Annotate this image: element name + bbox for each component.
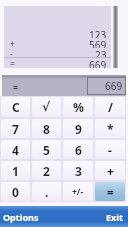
staticText: + (10, 38, 15, 48)
button[interactable]: 4 (1, 140, 30, 159)
button[interactable]: 5 (32, 140, 61, 159)
button[interactable]: - (95, 140, 125, 159)
staticText: - (108, 142, 112, 158)
staticText: 7 (12, 121, 19, 137)
staticText: 123 (89, 28, 107, 38)
button[interactable]: 9 (63, 119, 93, 138)
button[interactable]: Options (0, 211, 39, 223)
staticText: 3 (75, 163, 82, 179)
button[interactable]: +/- (63, 182, 93, 201)
button[interactable]: √ (32, 97, 61, 117)
staticText: % (73, 99, 84, 115)
staticText: 669 (105, 79, 123, 93)
button[interactable]: 8 (32, 119, 61, 138)
button[interactable]: * (95, 119, 125, 138)
staticText: = (13, 81, 19, 93)
button[interactable]: 2 (32, 161, 61, 180)
staticText: + (107, 163, 114, 179)
button[interactable]: . (32, 182, 61, 201)
button[interactable]: 7 (1, 119, 30, 138)
staticText: 0 (12, 184, 19, 200)
staticText: 569 (89, 38, 107, 48)
staticText: / (108, 99, 113, 115)
staticText: 23 (95, 48, 107, 58)
staticText: 6 (75, 142, 82, 158)
staticText: 5 (43, 142, 50, 158)
staticText: 8 (43, 121, 50, 137)
button[interactable]: C (1, 97, 30, 117)
staticText: √ (42, 100, 51, 114)
staticText: - (10, 48, 13, 58)
staticText: +/- (72, 186, 84, 198)
button[interactable]: 6 (63, 140, 93, 159)
button[interactable]: / (95, 97, 125, 117)
staticText: * (107, 121, 114, 137)
staticText: 2 (43, 163, 50, 179)
staticText: = (10, 58, 15, 68)
staticText: 669 (89, 58, 107, 68)
staticText: 9 (75, 121, 82, 137)
button[interactable]: % (63, 97, 93, 117)
button[interactable]: Exit (106, 211, 128, 223)
staticText: . (45, 184, 49, 200)
button[interactable]: 3 (63, 161, 93, 180)
staticText: 1 (12, 163, 19, 179)
button[interactable]: + (95, 161, 125, 180)
staticText: 4 (12, 142, 19, 158)
staticText: C (12, 99, 20, 115)
staticText: = (107, 184, 114, 200)
button[interactable]: = (95, 182, 125, 201)
button[interactable]: 1 (1, 161, 30, 180)
button[interactable]: 0 (1, 182, 30, 201)
